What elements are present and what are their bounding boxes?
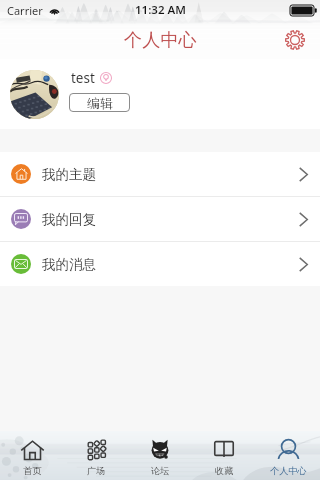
staticText: 编辑: [87, 95, 113, 111]
staticText: 个人中心: [270, 465, 307, 477]
button[interactable]: 首页: [0, 431, 64, 480]
staticText: 广场: [87, 465, 106, 477]
staticText: test: [71, 69, 95, 87]
button[interactable]: 收藏: [192, 431, 256, 480]
staticText: 11:32 AM: [135, 2, 186, 18]
button[interactable]: 编辑: [69, 93, 130, 112]
button[interactable]: 我的回复: [0, 197, 320, 241]
staticText: 我的回复: [42, 211, 96, 228]
staticText: 我的主题: [42, 166, 96, 183]
button[interactable]: 广场: [64, 431, 128, 480]
button[interactable]: 论坛: [128, 431, 192, 480]
staticText: 个人中心: [124, 28, 197, 51]
staticText: 我的消息: [42, 256, 96, 273]
button[interactable]: 个人中心: [256, 431, 320, 480]
button[interactable]: 我的主题: [0, 152, 320, 196]
staticText: 收藏: [215, 465, 234, 477]
staticText: Carrier: [7, 3, 43, 18]
button[interactable]: [0, 59, 320, 129]
staticText: 首页: [23, 465, 42, 477]
staticText: 论坛: [151, 465, 170, 477]
button[interactable]: Settings: [278, 23, 312, 57]
button[interactable]: 我的消息: [0, 242, 320, 286]
